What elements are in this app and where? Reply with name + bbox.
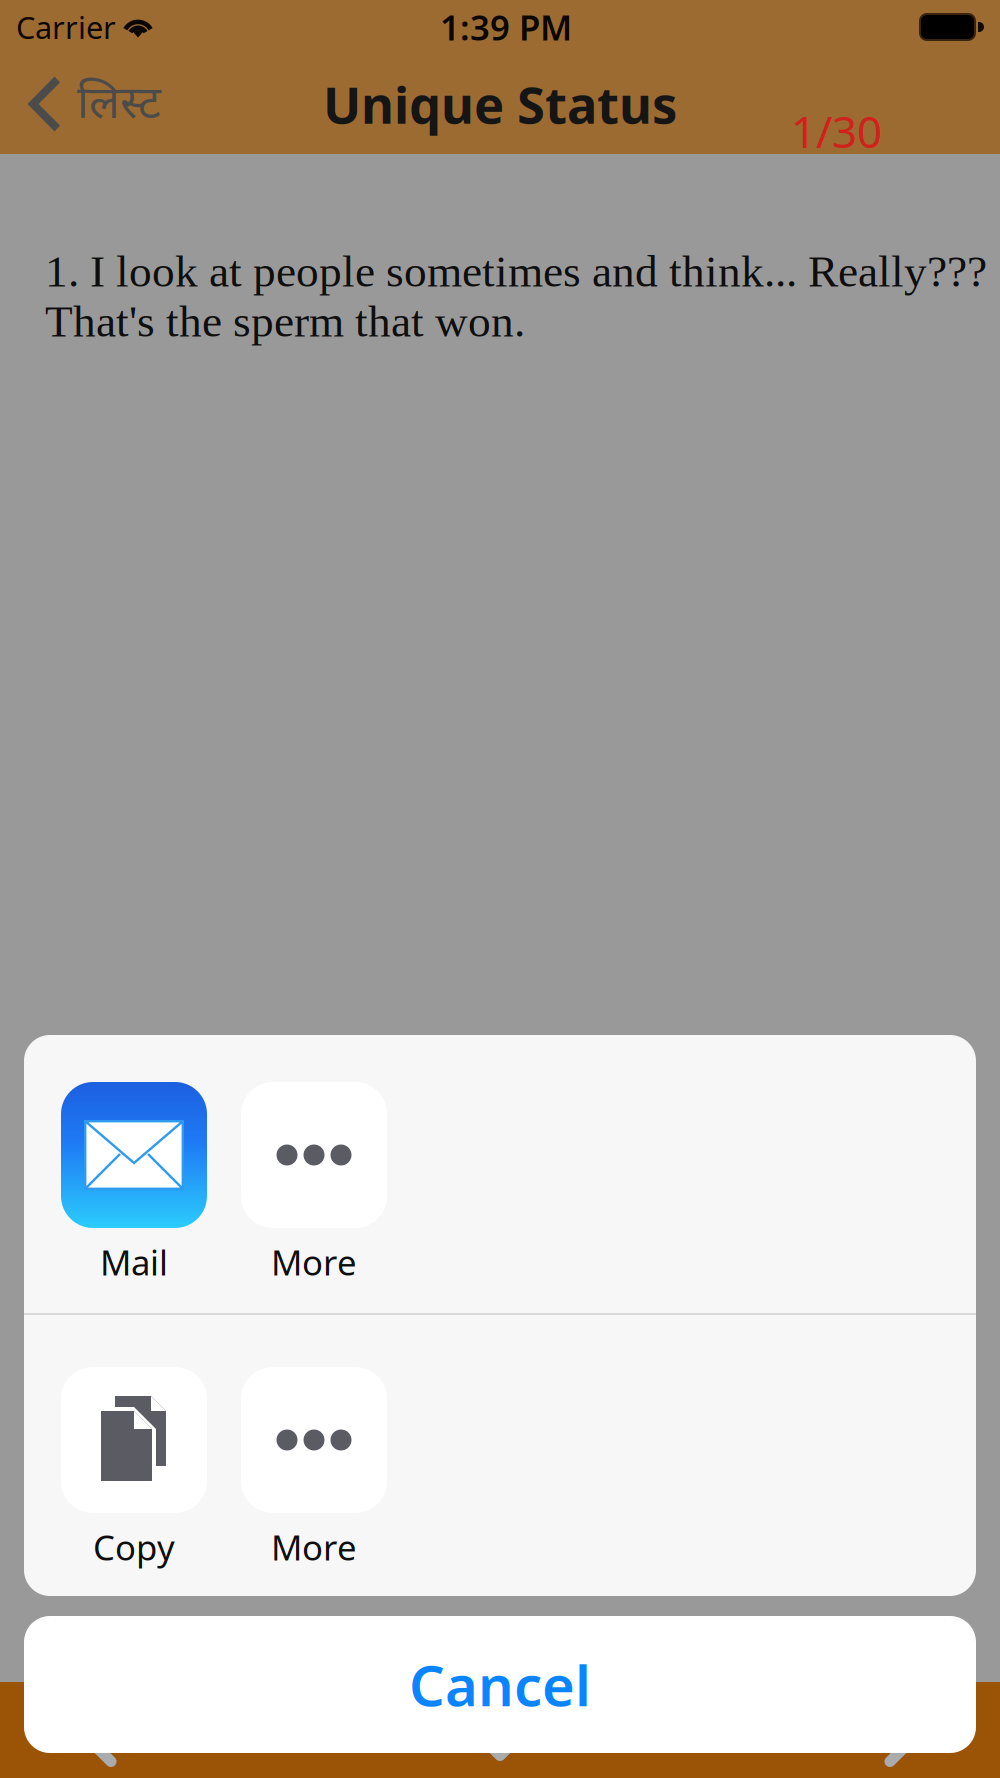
staticText: 1/30 [791, 102, 882, 160]
staticText: Carrier [16, 7, 116, 47]
button[interactable]: More [224, 1367, 404, 1570]
staticText: More [271, 1239, 357, 1285]
button[interactable]: Next status [784, 1672, 1000, 1768]
staticText: Cancel [409, 1647, 591, 1722]
button[interactable]: Mail [44, 1082, 224, 1285]
staticText: Unique Status [323, 70, 677, 138]
staticText: More [271, 1524, 357, 1570]
staticText: Copy [93, 1524, 175, 1570]
staticText: 1. I look at people sometimes and think.… [45, 246, 987, 346]
staticText: लिस्ट [77, 77, 161, 136]
button[interactable]: Cancel [24, 1616, 976, 1753]
button[interactable]: More [224, 1082, 404, 1285]
staticText: 1:39 PM [440, 4, 572, 50]
button[interactable]: लिस्ट [0, 54, 300, 154]
staticText: Mail [100, 1239, 168, 1285]
button[interactable]: Share status [392, 1672, 608, 1768]
button[interactable]: Previous status [0, 1672, 216, 1768]
button[interactable]: Copy [44, 1367, 224, 1570]
